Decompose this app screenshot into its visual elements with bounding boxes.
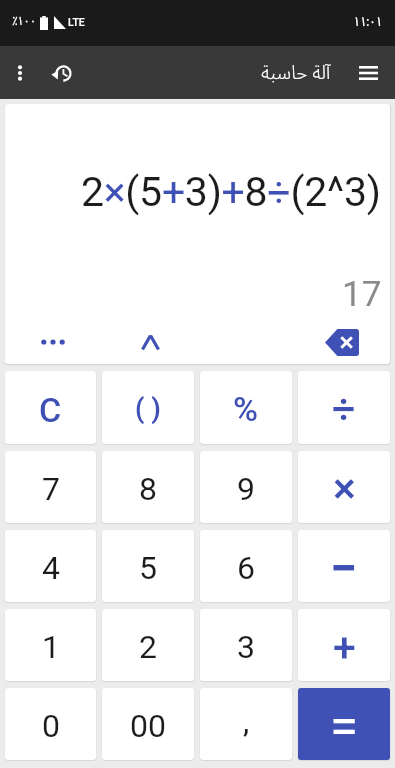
staticText: 4 bbox=[42, 549, 60, 587]
staticText: 9 bbox=[237, 470, 255, 508]
staticText: ٪١٠٠ bbox=[12, 9, 36, 34]
button[interactable]: 6 bbox=[200, 530, 292, 602]
staticText: 3 bbox=[237, 628, 255, 666]
button[interactable]: 00 bbox=[102, 688, 194, 760]
staticText: = bbox=[330, 697, 358, 757]
button[interactable]: + bbox=[298, 609, 390, 681]
button[interactable]: − bbox=[298, 530, 390, 602]
button[interactable]: 2 bbox=[102, 609, 194, 681]
staticText: 7 bbox=[42, 470, 60, 508]
staticText: C bbox=[39, 390, 62, 430]
staticText: 0 bbox=[42, 707, 60, 745]
staticText: 5 bbox=[139, 549, 157, 587]
staticText: 1 bbox=[42, 628, 60, 666]
button[interactable]: ( ) bbox=[102, 371, 194, 444]
button[interactable]: , bbox=[200, 688, 292, 760]
button[interactable]: × bbox=[298, 451, 390, 523]
staticText: − bbox=[330, 540, 358, 597]
staticText: 6 bbox=[237, 549, 255, 587]
button[interactable]: % bbox=[200, 371, 292, 444]
button[interactable]: 4 bbox=[5, 530, 96, 602]
button[interactable]: 8 bbox=[102, 451, 194, 523]
staticText: LTE bbox=[68, 16, 85, 28]
button[interactable]: More functions bbox=[31, 320, 75, 364]
button[interactable]: C bbox=[5, 371, 96, 444]
button[interactable]: 1 bbox=[5, 609, 96, 681]
button[interactable]: 3 bbox=[200, 609, 292, 681]
staticText: ÷ bbox=[332, 385, 356, 433]
button[interactable]: History bbox=[40, 51, 84, 95]
staticText: , bbox=[243, 702, 250, 740]
button[interactable]: ÷ bbox=[298, 371, 390, 444]
staticText: % bbox=[233, 389, 259, 429]
button[interactable]: Expand bbox=[128, 320, 172, 364]
button[interactable]: Backspace bbox=[320, 320, 364, 364]
button[interactable]: 9 bbox=[200, 451, 292, 523]
button[interactable]: 0 bbox=[5, 688, 96, 760]
staticText: ( ) bbox=[135, 393, 161, 425]
staticText: 8 bbox=[139, 470, 157, 508]
staticText: 00 bbox=[130, 707, 166, 745]
button[interactable]: 7 bbox=[5, 451, 96, 523]
staticText: 2×(5+3)+8÷(2^3) bbox=[81, 168, 381, 216]
staticText: + bbox=[333, 624, 356, 672]
staticText: 2 bbox=[139, 628, 157, 666]
staticText: آلة حاسبة bbox=[261, 53, 331, 93]
button[interactable]: = bbox=[298, 688, 390, 760]
button[interactable]: More options bbox=[0, 51, 42, 95]
staticText: 17 bbox=[342, 274, 382, 315]
button[interactable]: Menu bbox=[346, 51, 390, 95]
staticText: ١١:٠١ bbox=[353, 8, 382, 35]
button[interactable]: 5 bbox=[102, 530, 194, 602]
staticText: × bbox=[333, 463, 356, 513]
